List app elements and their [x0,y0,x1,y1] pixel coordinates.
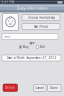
staticText: Baby Information [17,5,47,11]
button[interactable]: Date of Birth: September 27, 2012 [2,55,61,61]
staticText: Take Photo [33,25,48,28]
button[interactable]: Take Photo [22,23,60,30]
button[interactable]: Delete [3,84,17,91]
button[interactable]: Girl [36,45,45,49]
staticText: Girl [40,45,45,49]
staticText: Choose From Library [27,16,54,19]
staticText: Cancel [35,86,44,90]
button[interactable]: Choose From Library [22,14,60,21]
staticText: Boy [23,45,28,49]
staticText: Name [4,35,11,38]
staticText: Delete [5,86,15,89]
staticText: Type [29,41,35,45]
button[interactable]: Cancel [33,84,46,91]
staticText: Done [50,86,58,90]
staticText: 5:41 PM [1,0,13,4]
staticText: Date of Birth: September 27, 2012 [6,56,56,60]
button[interactable]: Boy [19,45,28,49]
button[interactable]: Done [47,84,61,91]
